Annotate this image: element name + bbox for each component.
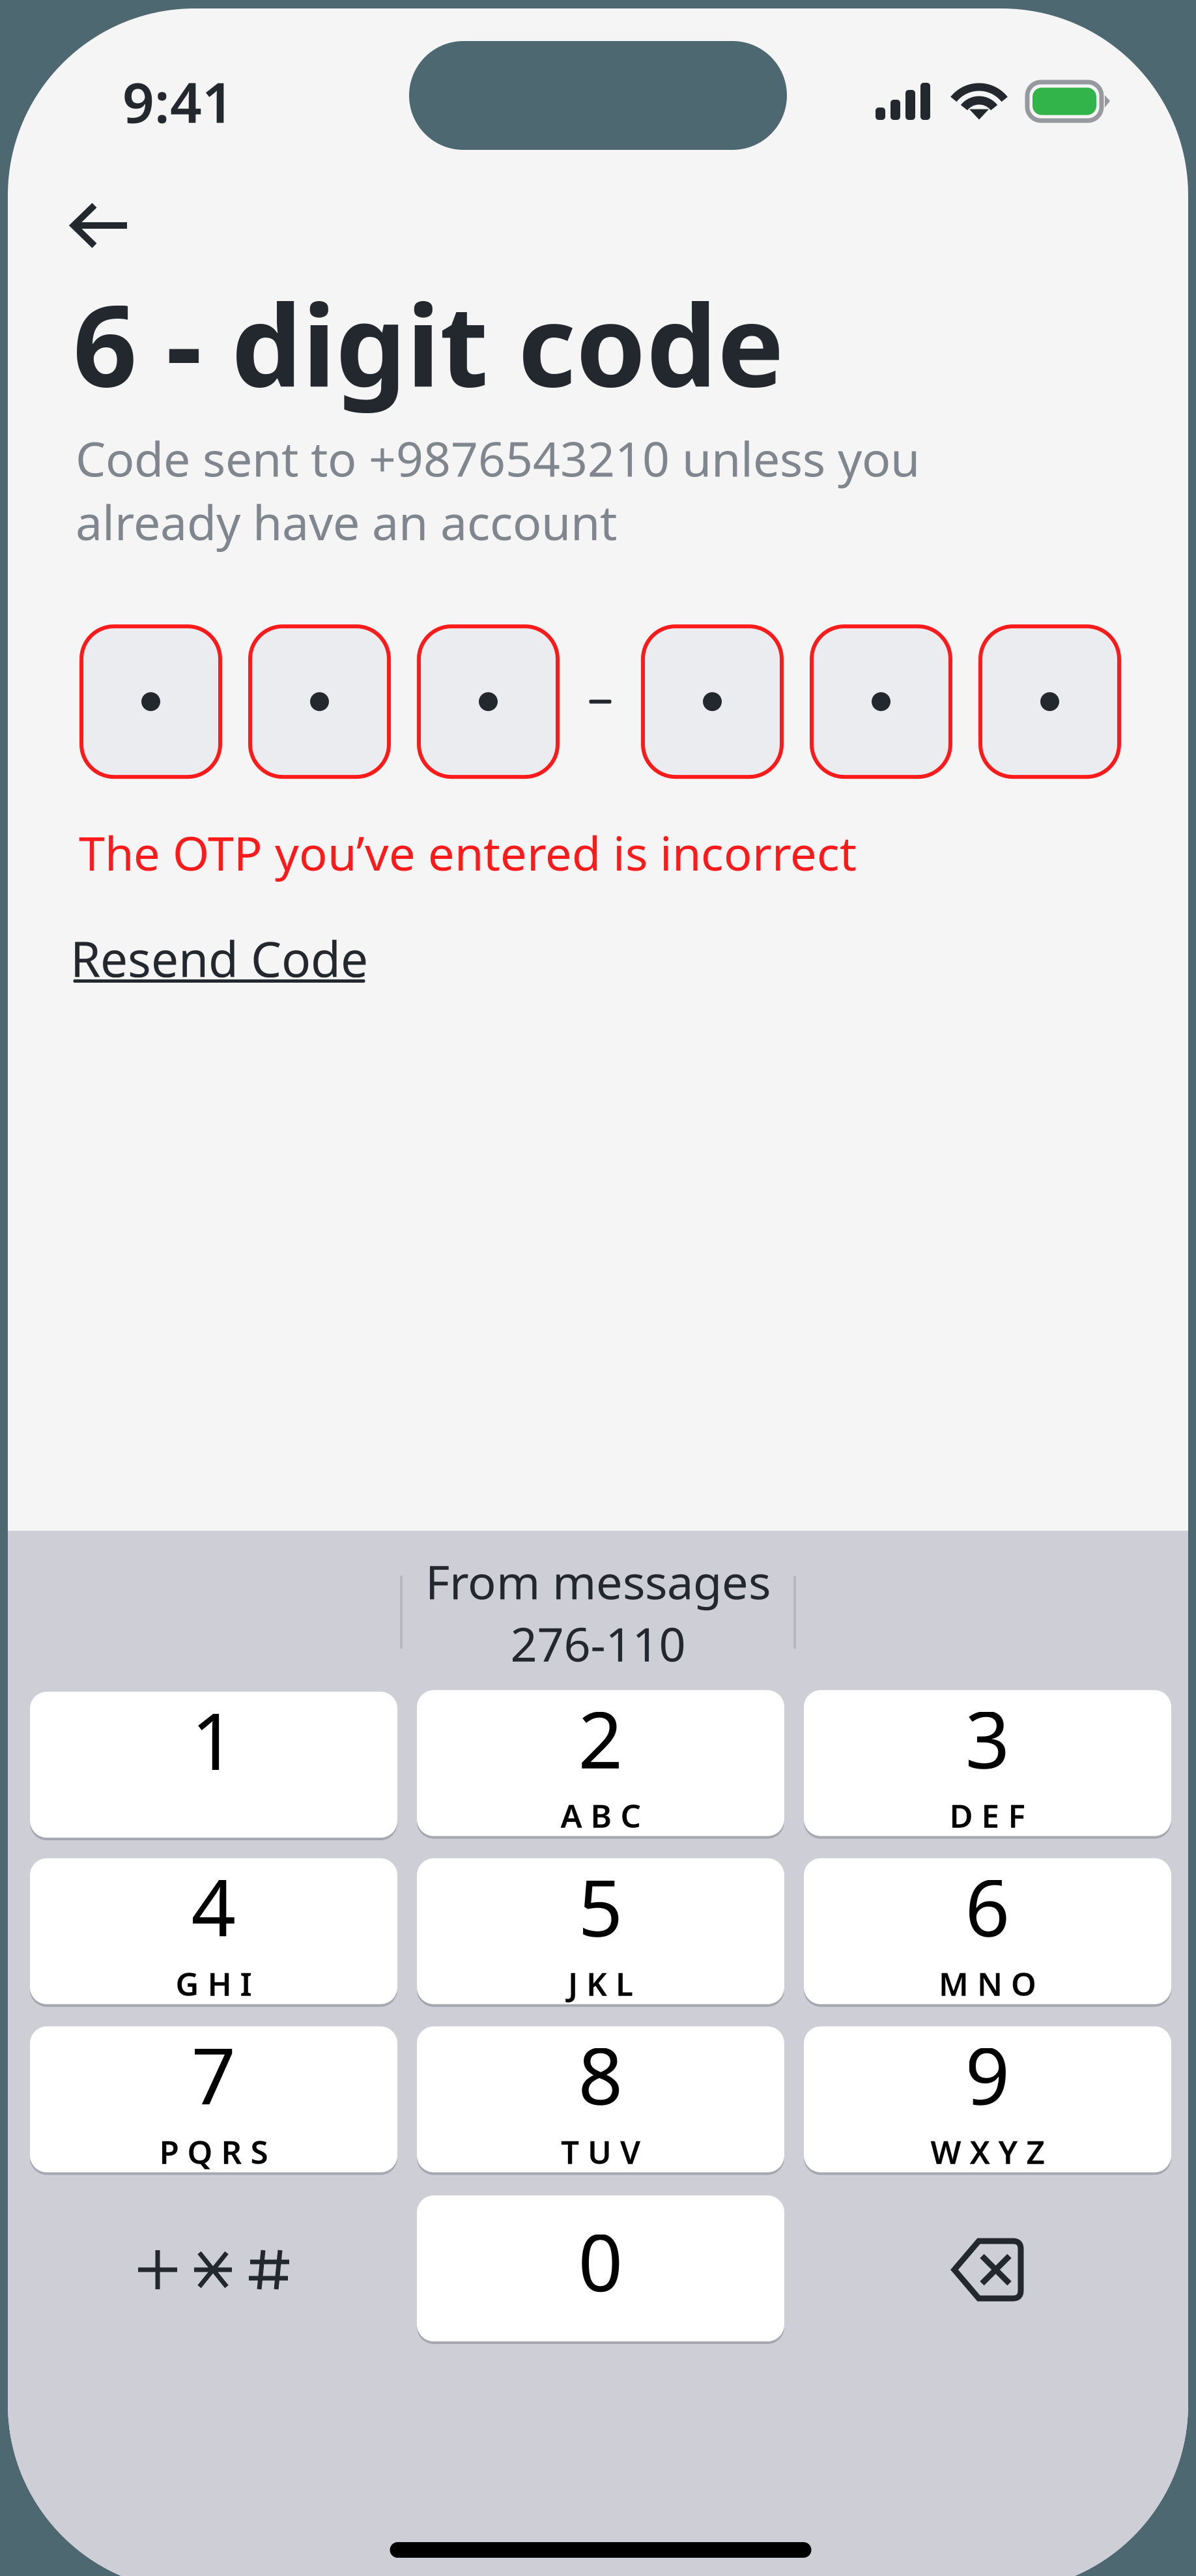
button[interactable]: Delete	[804, 2197, 1171, 2343]
staticText: T U V	[561, 2130, 640, 2173]
staticText: P Q R S	[159, 2130, 268, 2173]
staticText: 3	[965, 1686, 1010, 1790]
button[interactable]: 4	[30, 1860, 397, 2008]
staticText: 6 - digit code	[73, 268, 784, 417]
staticText: J K L	[568, 1962, 633, 2005]
button[interactable]: Resend Code	[70, 926, 368, 991]
staticText: G H I	[176, 1962, 252, 2005]
button[interactable]: Back	[50, 182, 150, 268]
staticText: 7	[191, 2022, 236, 2126]
staticText: A B C	[561, 1794, 641, 1837]
button[interactable]: 9	[804, 2028, 1171, 2177]
button[interactable]: 0	[417, 2195, 784, 2344]
staticText: 6	[965, 1854, 1010, 1958]
staticText: Code sent to +9876543210 unless you alre…	[76, 426, 920, 553]
staticText: 9	[965, 2022, 1010, 2126]
staticText: 8	[578, 2022, 623, 2126]
staticText: 276-110	[510, 1612, 686, 1674]
button[interactable]: 3	[804, 1692, 1171, 1840]
staticText: D E F	[949, 1794, 1026, 1837]
staticText: 0	[578, 2209, 623, 2313]
button[interactable]: 1	[30, 1692, 397, 1840]
button[interactable]: Symbols	[30, 2197, 397, 2343]
staticText: From messages	[425, 1550, 771, 1612]
button[interactable]: 8	[417, 2028, 784, 2177]
button[interactable]: 7	[30, 2028, 397, 2177]
staticText: 9:41	[122, 64, 234, 138]
staticText: W X Y Z	[931, 2130, 1045, 2173]
staticText: 1	[191, 1688, 236, 1792]
button[interactable]: 6	[804, 1860, 1171, 2008]
staticText: 5	[578, 1854, 623, 1958]
staticText: 2	[578, 1686, 623, 1790]
staticText: 4	[191, 1854, 236, 1958]
staticText: Resend Code	[70, 926, 368, 991]
staticText: The OTP you’ve entered is incorrect	[79, 821, 857, 884]
staticText: M N O	[939, 1962, 1036, 2005]
button[interactable]: 5	[417, 1860, 784, 2008]
button[interactable]: 2	[417, 1692, 784, 1840]
